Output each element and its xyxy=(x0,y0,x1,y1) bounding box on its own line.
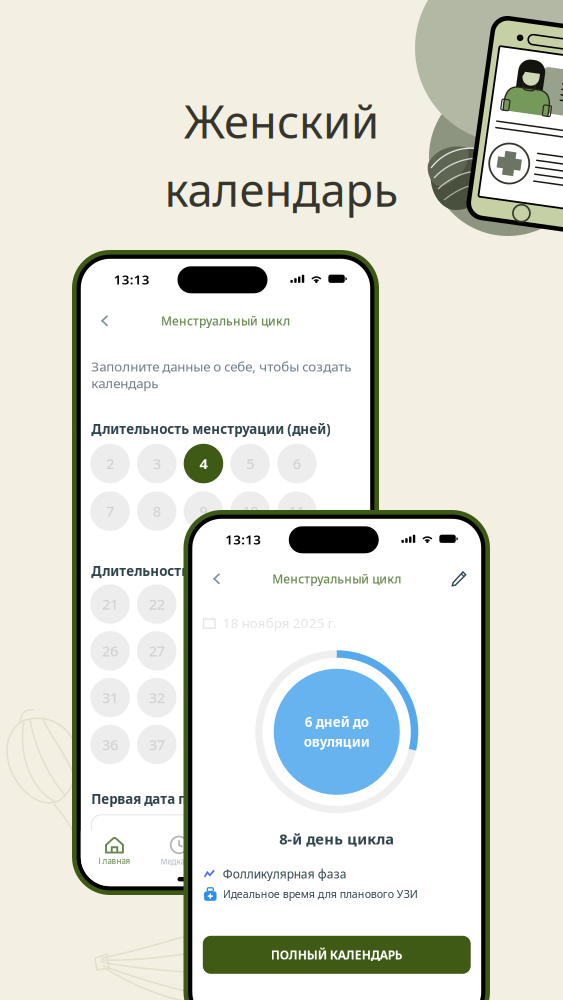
button[interactable]: 39 xyxy=(230,725,270,764)
staticText: ПОЛНЫЙ КАЛЕНДАРЬ xyxy=(271,947,403,963)
staticText: 8 xyxy=(153,501,161,521)
button[interactable]: 2 xyxy=(90,444,130,483)
staticText: овуляции xyxy=(304,733,370,750)
staticText: 8-й день цикла xyxy=(279,829,394,849)
button[interactable]: 24 xyxy=(230,584,270,624)
staticText: 6 xyxy=(293,454,301,473)
button[interactable]: Профиль xyxy=(276,834,341,868)
staticText: Главная xyxy=(98,855,130,866)
button[interactable]: 40 xyxy=(277,725,317,764)
staticText: 4 xyxy=(199,454,207,473)
staticText: Первая дата последней менструации xyxy=(91,790,347,808)
button[interactable]: Назад xyxy=(91,307,119,335)
staticText: Медкарта xyxy=(161,856,198,867)
staticText: Фолликулярная фаза xyxy=(223,866,347,882)
staticText: 32 xyxy=(149,688,165,707)
staticText: Идеальное время для планового УЗИ xyxy=(223,887,418,901)
staticText: 13:13 xyxy=(225,530,261,548)
staticText: 6 дней до xyxy=(305,713,369,731)
staticText: 9 xyxy=(199,501,207,521)
button[interactable]: 27 xyxy=(137,631,176,671)
staticText: 2 xyxy=(106,454,114,473)
staticText: 31 xyxy=(102,688,118,707)
button[interactable]: Редактировать xyxy=(445,565,473,593)
staticText: 11 xyxy=(289,501,305,521)
staticText: 39 xyxy=(242,735,258,754)
staticText: 10 xyxy=(242,501,258,521)
staticText: 5 xyxy=(246,454,254,473)
button[interactable]: 33 xyxy=(184,678,223,717)
staticText: 21 xyxy=(102,594,118,614)
staticText: календарь xyxy=(164,159,398,219)
staticText: 13:13 xyxy=(114,270,150,288)
staticText: Женский xyxy=(184,91,379,151)
button[interactable]: 34 xyxy=(230,678,270,717)
staticText: Менструальный цикл xyxy=(272,571,401,587)
button[interactable]: ПОЛНЫЙ КАЛЕНДАРЬ xyxy=(203,936,471,974)
button[interactable]: 6 xyxy=(277,444,317,483)
staticText: 7 xyxy=(106,501,114,521)
button[interactable]: 38 xyxy=(184,725,223,764)
staticText: 26 xyxy=(102,641,118,661)
staticText: календарь xyxy=(91,374,158,392)
button[interactable]: 26 xyxy=(90,631,130,671)
button[interactable]: 23 xyxy=(184,584,223,624)
staticText: 18 ноября 2025 г. xyxy=(223,614,337,632)
button[interactable]: 8 xyxy=(137,491,176,531)
button[interactable]: 4 xyxy=(184,444,223,483)
staticText: 37 xyxy=(149,735,165,754)
staticText: Менструальный цикл xyxy=(161,313,290,329)
staticText: Заполните данные о себе, чтобы создать xyxy=(91,358,351,375)
button[interactable]: 21 xyxy=(90,584,130,624)
staticText: 36 xyxy=(102,735,118,754)
staticText: 27 xyxy=(149,641,165,661)
button[interactable]: 3 xyxy=(137,444,176,483)
button[interactable]: 36 xyxy=(90,725,130,764)
staticText: 22 xyxy=(149,594,165,614)
button[interactable]: 7 xyxy=(90,491,130,531)
staticText: 3 xyxy=(153,454,161,473)
button[interactable]: 25 xyxy=(277,584,317,624)
staticText: Длительность менструации (дней) xyxy=(91,420,331,438)
button[interactable]: 5 xyxy=(230,444,270,483)
button[interactable]: 11 xyxy=(277,491,317,531)
button[interactable]: 31 xyxy=(90,678,130,717)
button[interactable]: 32 xyxy=(137,678,176,717)
staticText: 35 xyxy=(289,688,305,707)
button[interactable]: Главная xyxy=(82,834,147,868)
button[interactable]: Медкарта xyxy=(147,834,211,868)
button[interactable]: 22 xyxy=(137,584,176,624)
button[interactable]: 35 xyxy=(277,678,317,717)
button[interactable]: 28 xyxy=(184,631,223,671)
staticText: 30 xyxy=(289,641,305,661)
staticText: 40 xyxy=(289,735,305,754)
button[interactable]: 37 xyxy=(137,725,176,764)
staticText: Длительность цикла (дней) xyxy=(91,562,281,580)
button[interactable]: 10 xyxy=(230,491,270,531)
button[interactable]: 9 xyxy=(184,491,223,531)
button[interactable]: Назад xyxy=(203,565,231,593)
button[interactable]: 30 xyxy=(277,631,317,671)
